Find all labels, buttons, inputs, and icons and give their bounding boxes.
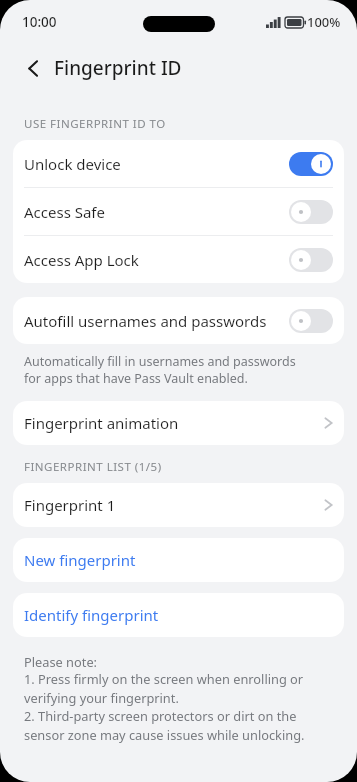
button[interactable]: Fingerprint animation [13,401,344,445]
button[interactable]: New fingerprint [13,538,344,582]
staticText: New fingerprint [24,550,136,570]
staticText: Automatically fill in usernames and pass… [24,353,296,387]
staticText: 10:00 [22,13,57,31]
staticText: Fingerprint ID [54,55,182,81]
staticText: Fingerprint 1 [24,495,324,515]
button[interactable] [289,152,333,176]
button[interactable]: Access App Lock [13,236,344,283]
staticText: Autofill usernames and passwords [24,311,289,331]
staticText: Please note: [24,653,98,670]
button[interactable] [289,248,333,272]
staticText: Access App Lock [24,250,289,270]
button[interactable]: Unlock device [13,140,344,187]
button[interactable]: Fingerprint 1 [13,483,344,527]
staticText: Fingerprint animation [24,413,324,433]
staticText: FINGERPRINT LIST (1/5) [24,459,162,475]
staticText: 100% [307,13,341,31]
button[interactable] [289,200,333,224]
staticText: Identify fingerprint [24,605,159,625]
staticText: Unlock device [24,154,289,174]
button[interactable] [289,309,333,333]
button[interactable]: Access Safe [13,188,344,235]
staticText: Access Safe [24,202,289,222]
staticText: USE FINGERPRINT ID TO [24,116,166,132]
staticText: 1. Press firmly on the screen when enrol… [24,670,339,707]
staticText: 2. Third-party screen protectors or dirt… [24,707,339,744]
button[interactable]: Identify fingerprint [13,593,344,637]
button[interactable]: Back [18,53,48,83]
button[interactable]: Autofill usernames and passwords [13,297,344,344]
